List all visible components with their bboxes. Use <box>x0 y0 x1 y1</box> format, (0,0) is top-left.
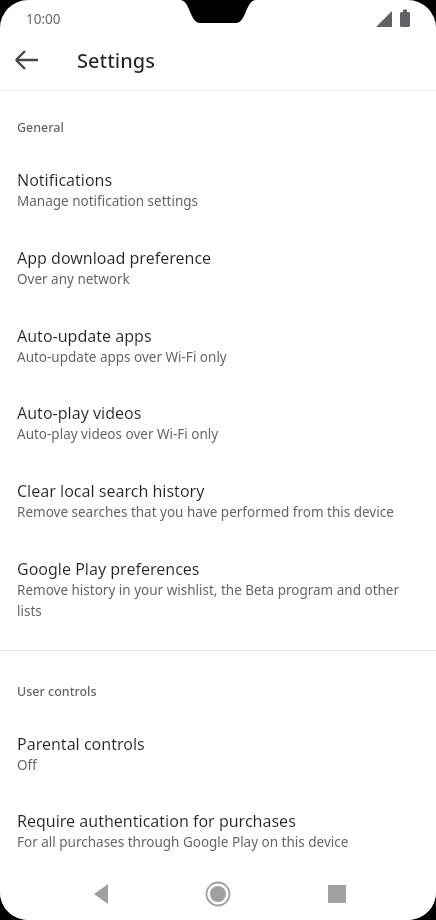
staticText: 10:00 <box>26 10 61 28</box>
staticText: Remove searches that you have performed … <box>17 503 419 521</box>
button[interactable]: Require authentication for purchases <box>0 796 436 862</box>
staticText: User controls <box>17 683 97 700</box>
button[interactable]: Recent apps <box>313 870 361 918</box>
staticText: Require authentication for purchases <box>17 810 296 832</box>
staticText: Manage notification settings <box>17 192 419 210</box>
staticText: Google Play preferences <box>17 558 200 580</box>
staticText: Off <box>17 756 419 774</box>
button[interactable]: Back <box>8 38 52 82</box>
staticText: Settings <box>77 47 155 74</box>
button[interactable]: Notifications <box>0 155 436 221</box>
staticText: Remove history in your wishlist, the Bet… <box>17 581 415 620</box>
staticText: General <box>17 119 64 136</box>
staticText: Auto-update apps <box>17 325 152 347</box>
staticText: Over any network <box>17 270 419 288</box>
button[interactable]: Google Play preferences <box>0 544 436 632</box>
staticText: Notifications <box>17 169 113 191</box>
button[interactable]: Parental controls <box>0 719 436 785</box>
staticText: Auto-play videos over Wi-Fi only <box>17 425 419 443</box>
button[interactable]: Home <box>194 870 242 918</box>
button[interactable]: App download preference <box>0 233 436 299</box>
staticText: Parental controls <box>17 733 145 755</box>
staticText: Auto-update apps over Wi-Fi only <box>17 348 419 366</box>
button[interactable]: Back <box>78 870 126 918</box>
button[interactable]: Clear local search history <box>0 466 436 532</box>
staticText: App download preference <box>17 247 212 269</box>
button[interactable]: Auto-update apps <box>0 311 436 377</box>
button[interactable]: Auto-play videos <box>0 388 436 454</box>
staticText: For all purchases through Google Play on… <box>17 833 419 851</box>
staticText: Clear local search history <box>17 480 205 502</box>
staticText: Auto-play videos <box>17 402 142 424</box>
